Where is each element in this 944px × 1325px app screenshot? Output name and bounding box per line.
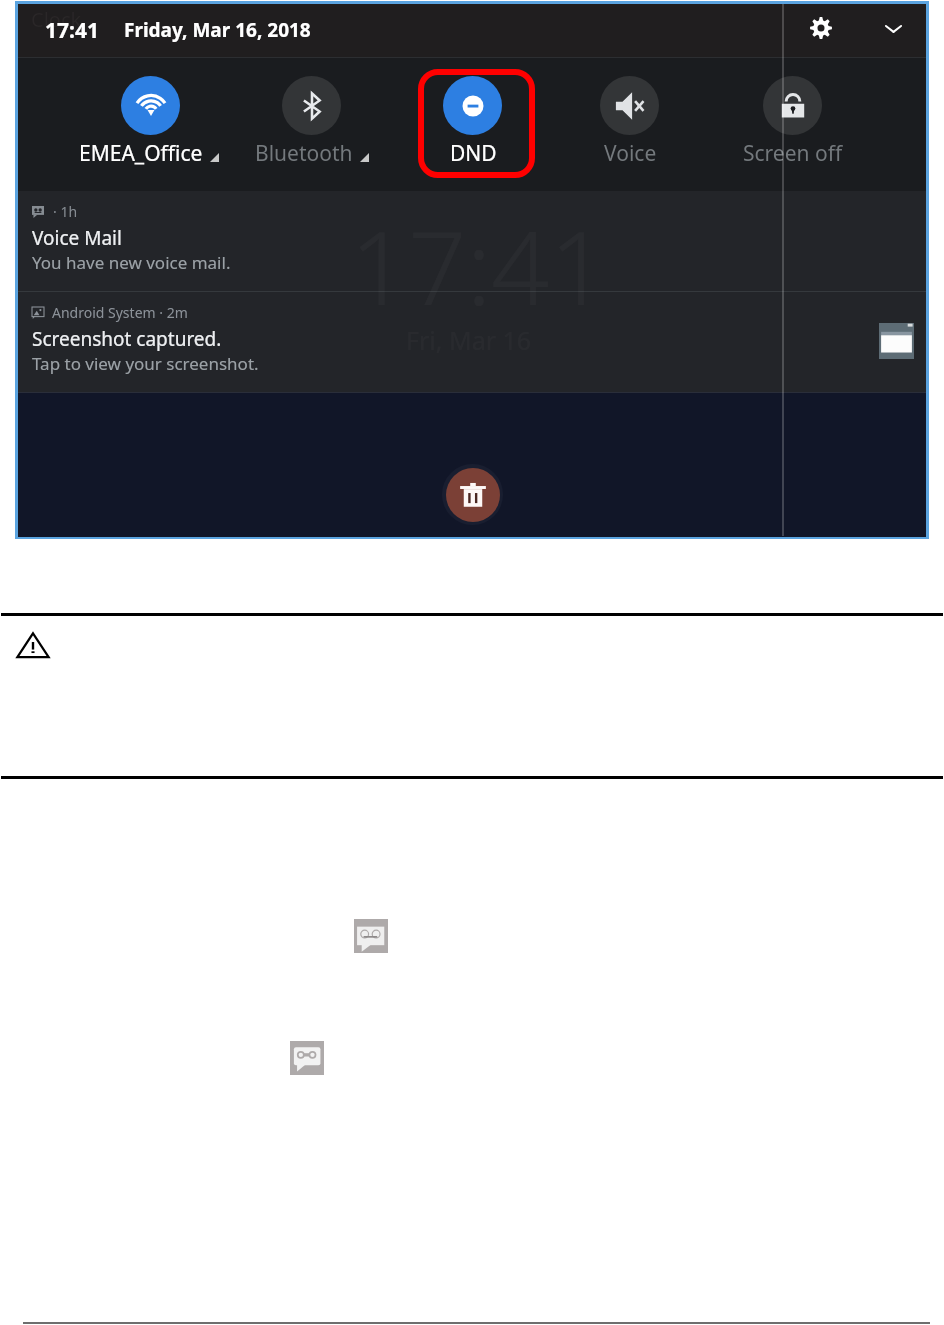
staticText: Voice Mail	[32, 225, 122, 251]
button[interactable]: Bluetooth	[234, 76, 390, 192]
staticText: Tap to view your screenshot.	[32, 352, 259, 375]
staticText: Clock	[31, 6, 82, 33]
staticText: You have new voice mail.	[32, 251, 231, 274]
staticText: Friday, Mar 16, 2018	[124, 17, 311, 43]
button[interactable]: EMEA_Office	[73, 76, 229, 192]
button[interactable]: Quick settings	[800, 7, 842, 49]
button[interactable]: Screen off	[715, 76, 871, 192]
button[interactable]: Expand	[872, 7, 914, 49]
staticText: Voice	[604, 139, 657, 168]
staticText: · 1h	[53, 202, 78, 221]
staticText: Bluetooth	[255, 139, 353, 168]
staticText: Android System · 2m	[52, 303, 188, 322]
staticText: EMEA_Office	[79, 139, 203, 168]
button[interactable]: · 1h	[18, 191, 926, 292]
staticText: 17:41	[45, 16, 99, 45]
button[interactable]: Clear all notifications	[446, 468, 500, 522]
button[interactable]: Clock	[18, 4, 926, 57]
button[interactable]: Voice	[552, 76, 708, 192]
staticText: Screen off	[743, 139, 843, 168]
staticText: Screenshot captured.	[32, 326, 222, 352]
staticText: DND	[450, 139, 497, 168]
button[interactable]: Android System · 2m	[18, 292, 926, 392]
button[interactable]: DND	[395, 76, 551, 192]
